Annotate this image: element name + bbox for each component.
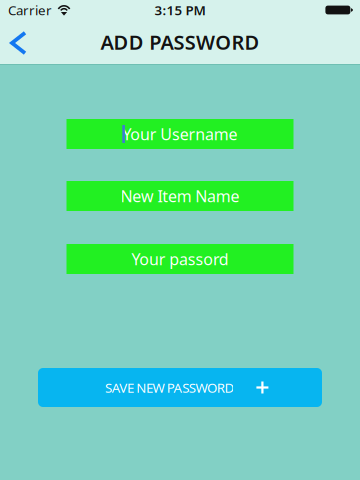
staticText: SAVE NEW PASSWORD [105, 379, 234, 396]
button[interactable]: Back [0, 30, 39, 54]
button[interactable]: Your Username [66, 119, 293, 149]
button[interactable]: New Item Name [66, 181, 293, 211]
staticText: 3:15 PM [154, 1, 205, 19]
staticText: ADD PASSWORD [100, 29, 260, 55]
staticText: Carrier [8, 1, 52, 19]
button[interactable]: SAVE NEW PASSWORD [38, 368, 322, 407]
staticText: Your passord [131, 248, 229, 270]
button[interactable]: Your passord [66, 244, 293, 274]
staticText: Your Username [122, 123, 237, 145]
staticText: New Item Name [120, 185, 239, 207]
